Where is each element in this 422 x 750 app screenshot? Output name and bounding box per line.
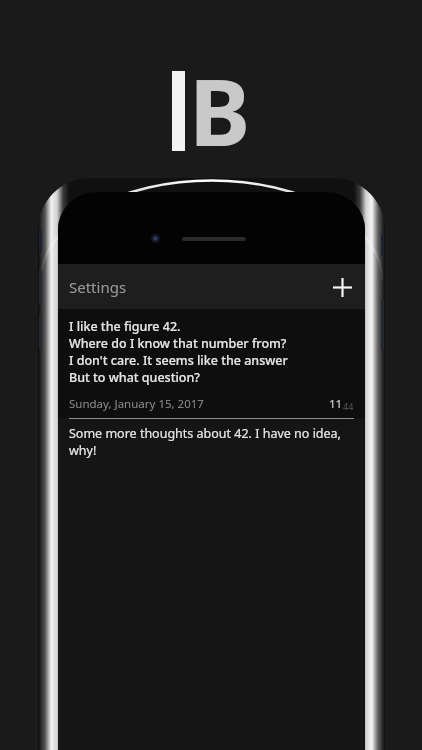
button[interactable]: I like the figure 42. (58, 309, 365, 393)
staticText: Some more thoughts about 42. I have no i… (69, 425, 354, 459)
staticText: B (189, 48, 251, 173)
button[interactable]: IB logo (172, 48, 251, 173)
button[interactable]: Add note (325, 270, 359, 304)
staticText: I like the figure 42. (69, 318, 181, 335)
button[interactable]: Some more thoughts about 42. I have no i… (58, 419, 365, 465)
button[interactable]: Settings (58, 269, 138, 305)
staticText: Where do I know that number from? (69, 335, 287, 352)
staticText: But to what question? (69, 369, 200, 386)
staticText: Sunday, January 15, 2017 (69, 396, 204, 412)
staticText: 11 (329, 396, 343, 412)
button[interactable]: Sunday, January 15, 2017 (58, 393, 365, 418)
staticText: Settings (69, 277, 127, 297)
staticText: I don't care. It seems like the answer (69, 352, 288, 369)
staticText: 44 (343, 400, 354, 412)
